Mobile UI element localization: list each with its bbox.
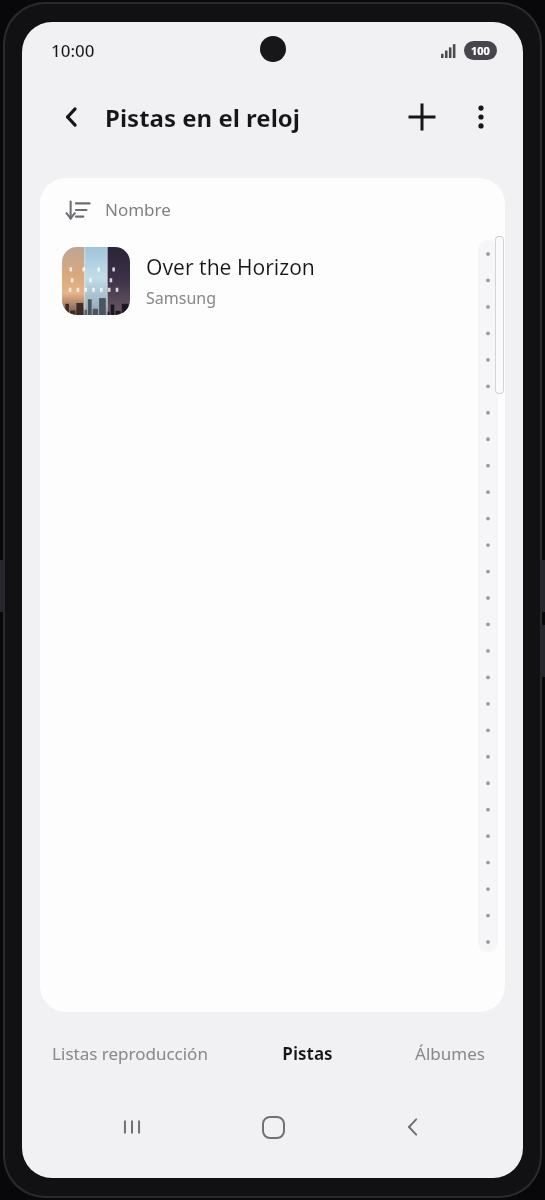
staticText: Listas reproducción bbox=[52, 1042, 208, 1065]
button[interactable]: Nombre bbox=[68, 198, 171, 221]
staticText: Pistas en el reloj bbox=[105, 101, 300, 134]
button[interactable]: Back bbox=[50, 95, 94, 139]
button[interactable]: Add bbox=[399, 94, 445, 140]
staticText: 10:00 bbox=[51, 39, 95, 62]
staticText: Samsung bbox=[146, 287, 217, 309]
button[interactable]: Pistas bbox=[238, 1016, 377, 1090]
staticText: Over the Horizon bbox=[146, 253, 315, 282]
button[interactable]: Home bbox=[243, 1097, 303, 1157]
button[interactable]: More options bbox=[459, 95, 503, 139]
button[interactable]: Back bbox=[383, 1097, 443, 1157]
button[interactable]: Álbumes bbox=[377, 1016, 523, 1090]
button[interactable]: Listas reproducción bbox=[22, 1016, 238, 1090]
staticText: Nombre bbox=[105, 198, 171, 221]
staticText: Álbumes bbox=[415, 1042, 485, 1065]
staticText: Pistas bbox=[282, 1042, 333, 1065]
button[interactable]: Over the Horizon bbox=[40, 243, 505, 319]
staticText: 100 bbox=[471, 43, 490, 58]
button[interactable]: Alphabet index bbox=[478, 240, 498, 952]
button[interactable]: Recent apps bbox=[102, 1097, 162, 1157]
